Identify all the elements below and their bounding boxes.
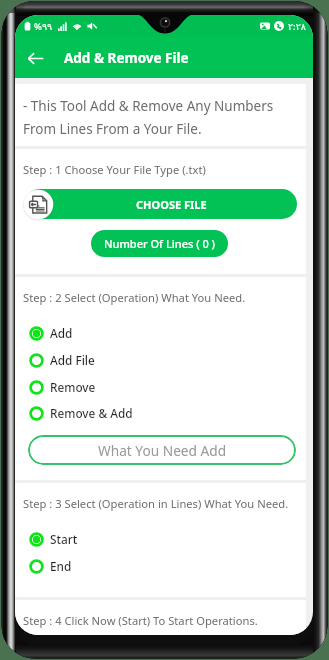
- staticText: What You Need Add: [98, 441, 227, 460]
- staticText: %٩٩: [34, 20, 53, 33]
- button[interactable]: Choose file: [23, 189, 54, 220]
- staticText: Add & Remove File: [64, 49, 189, 67]
- staticText: Add: [50, 325, 73, 341]
- button[interactable]: Remove & Add: [15, 400, 306, 426]
- button[interactable]: Back: [19, 42, 51, 74]
- staticText: Step : 1 Choose Your File Type (.txt): [23, 162, 206, 177]
- button[interactable]: What You Need Add: [28, 435, 296, 465]
- button[interactable]: CHOOSE FILE: [25, 189, 297, 219]
- staticText: Add File: [50, 352, 95, 368]
- button[interactable]: Add: [15, 320, 306, 346]
- button[interactable]: Start: [15, 526, 306, 552]
- staticText: Step : 4 Click Now (Start) To Start Oper…: [23, 613, 258, 628]
- staticText: CHOOSE FILE: [136, 197, 207, 212]
- staticText: - This Tool Add & Remove Any Numbers Fro…: [23, 97, 292, 138]
- staticText: Remove & Add: [50, 405, 133, 421]
- staticText: Remove: [50, 379, 96, 395]
- staticText: Number Of Lines ( 0 ): [104, 236, 216, 251]
- button[interactable]: Number Of Lines ( 0 ): [91, 230, 228, 257]
- button[interactable]: End: [15, 553, 306, 579]
- staticText: End: [50, 558, 72, 574]
- staticText: ٢:٢٨: [288, 20, 306, 33]
- button[interactable]: Add File: [15, 347, 306, 373]
- staticText: Start: [50, 531, 78, 547]
- staticText: Step : 2 Select (Operation) What You Nee…: [23, 290, 246, 305]
- button[interactable]: Remove: [15, 374, 306, 400]
- staticText: Step : 3 Select (Operation in Lines) Wha…: [23, 496, 289, 511]
